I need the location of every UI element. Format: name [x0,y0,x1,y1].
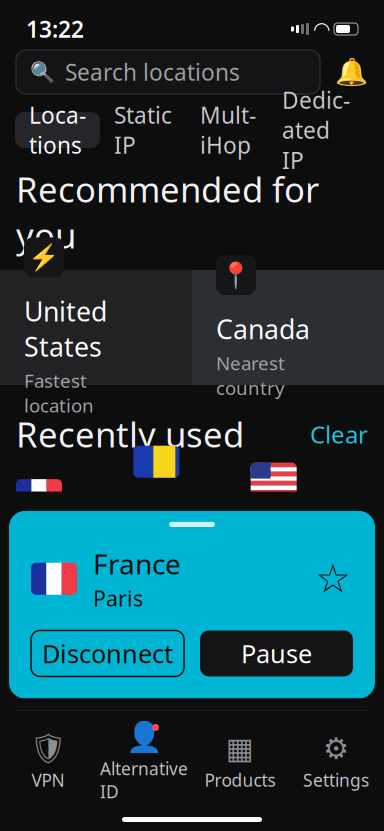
staticText: Paris [93,584,143,612]
button[interactable]: Notifications [334,55,368,89]
staticText: ⚙ [323,732,349,765]
staticText: Dedicated IP [282,85,350,175]
button[interactable]: France [16,479,133,587]
staticText: 👤 [125,720,162,754]
button[interactable]: Favorite [313,559,353,599]
button[interactable]: Pause [200,630,353,676]
staticText: Search locations [65,57,240,87]
staticText: ☆ [328,676,364,722]
staticText: 🦅 [32,689,54,709]
button[interactable]: 👤 [96,723,192,803]
button[interactable]: ▦ [192,734,288,791]
staticText: Canada [216,311,310,346]
staticText: ☆ [315,556,351,601]
staticText: ◠ [314,18,329,40]
staticText: 13:22 [26,14,84,44]
staticText: Nearest country [216,350,285,400]
staticText: ⚡ [28,243,60,272]
staticText: Static IP [114,100,172,160]
staticText: Alternative ID [100,757,188,803]
button[interactable]: MultiHop [186,112,270,148]
button[interactable]: ⚙ [288,734,384,791]
button[interactable]: Static IP [100,112,186,148]
staticText: VPN [31,768,64,791]
button[interactable]: 🦅 [0,673,384,725]
staticText: 🔔 [334,57,367,87]
staticText: Fastest location [24,368,94,418]
staticText: Products [204,768,275,791]
staticText: United States [251,509,332,576]
button[interactable]: Locations [15,112,100,148]
button[interactable]: 🔍 [16,50,320,94]
staticText: France [93,545,181,582]
staticText: Disconnect [42,637,173,670]
staticText: ▦ [226,732,254,765]
staticText: United States [24,293,107,364]
staticText: MultiHop [200,100,256,160]
button[interactable]: 🛡 [0,734,96,791]
staticText: Recommended for you [16,166,319,258]
button[interactable]: United States [251,479,368,587]
staticText: 📍 [220,261,252,289]
button[interactable]: Clear [310,418,368,450]
staticText: Pause [241,637,312,670]
button[interactable]: 📍 [192,270,384,385]
staticText: Clear [310,418,368,450]
staticText: Bosnia & Herzegovina [133,492,241,593]
staticText: 🛡 [29,732,66,765]
staticText: Sarajevo [133,596,205,620]
button[interactable]: Bosnia & Herzegovina [133,479,251,587]
staticText: Settings [303,768,369,791]
staticText: Locations [29,100,86,160]
button[interactable]: Disconnect [31,630,184,676]
staticText: Recently used [16,411,244,457]
staticText: 🔍 [30,61,55,83]
staticText: Locations [16,613,172,659]
staticText: Tirana [80,705,134,729]
button[interactable]: ⚡ [0,270,192,385]
staticText: Paris [16,562,59,587]
staticText: Albania [80,669,170,702]
button[interactable]: Dedicated IP [270,112,362,148]
